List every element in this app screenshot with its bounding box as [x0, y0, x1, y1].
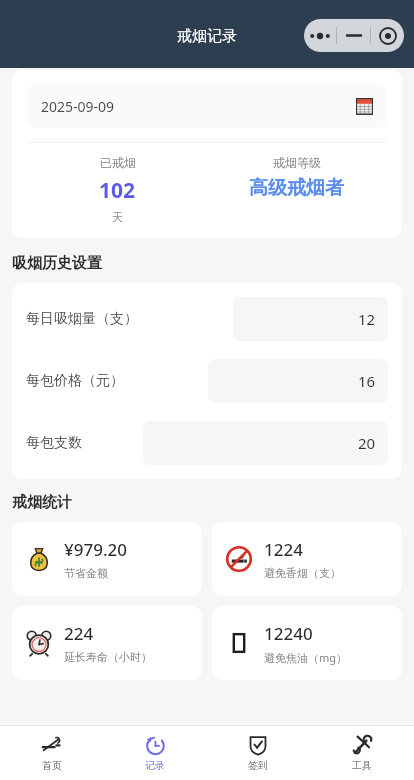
staticText: 避免焦油（mg）: [264, 650, 348, 665]
staticText: 16: [358, 371, 376, 391]
button[interactable]: 1224: [212, 522, 402, 596]
staticText: 天: [112, 210, 123, 224]
button[interactable]: 12: [233, 297, 388, 341]
staticText: 戒烟记录: [177, 27, 237, 46]
button[interactable]: 更多: [304, 19, 336, 52]
button[interactable]: 关闭: [371, 19, 404, 52]
staticText: 224: [64, 622, 94, 645]
button[interactable]: 224: [12, 606, 202, 680]
staticText: 签到: [248, 759, 268, 772]
button[interactable]: 20: [143, 421, 388, 465]
staticText: 高级戒烟者: [249, 176, 344, 200]
staticText: 记录: [145, 759, 165, 772]
button[interactable]: 16: [208, 359, 388, 403]
button[interactable]: 12240: [212, 606, 402, 680]
staticText: 节省金额: [64, 566, 108, 580]
staticText: ¥979.20: [64, 538, 127, 561]
staticText: 20: [358, 433, 376, 453]
staticText: 避免香烟（支）: [264, 566, 341, 580]
staticText: 12: [358, 309, 376, 329]
staticText: 延长寿命（小时）: [64, 650, 152, 664]
button[interactable]: 2025-09-09: [28, 84, 386, 128]
button[interactable]: 首页: [0, 726, 103, 780]
staticText: 12240: [264, 622, 313, 645]
staticText: 工具: [352, 759, 372, 772]
staticText: 首页: [42, 759, 62, 772]
staticText: 吸烟历史设置: [12, 254, 102, 273]
staticText: 102: [99, 176, 136, 205]
staticText: 已戒烟: [100, 155, 136, 170]
staticText: 戒烟统计: [12, 493, 72, 512]
staticText: 1224: [264, 538, 303, 561]
staticText: 2025-09-09: [41, 97, 115, 116]
button[interactable]: 签到: [206, 726, 310, 780]
button[interactable]: 工具: [310, 726, 414, 780]
button[interactable]: 记录: [103, 726, 206, 780]
staticText: 每日吸烟量（支）: [26, 310, 138, 328]
staticText: 戒烟等级: [273, 155, 321, 170]
button[interactable]: 最小化: [337, 19, 370, 52]
button[interactable]: ¥979.20: [12, 522, 202, 596]
staticText: 每包支数: [26, 434, 82, 452]
staticText: 每包价格（元）: [26, 372, 124, 390]
